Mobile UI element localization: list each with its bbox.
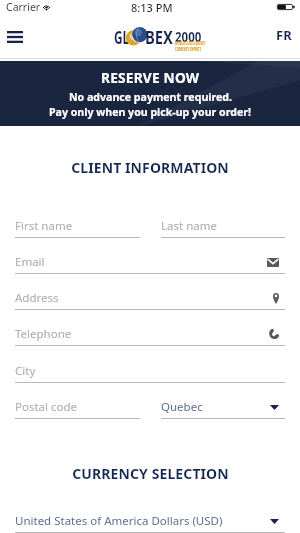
staticText: FR: [276, 26, 292, 44]
staticText: City: [15, 363, 36, 379]
staticText: Quebec: [161, 399, 203, 415]
button[interactable]: Telephone: [15, 324, 285, 346]
staticText: CURRENCY EXPERTS: [175, 46, 202, 52]
staticText: BEX: [145, 25, 174, 49]
staticText: Pay only when you pick-up your order!: [49, 105, 251, 119]
button[interactable]: City: [15, 361, 285, 383]
staticText: No advance payment required.: [69, 90, 232, 104]
staticText: 8:13 PM: [131, 0, 173, 15]
other: Open list: [270, 405, 279, 410]
staticText: Carrier: [6, 0, 41, 14]
button[interactable]: Quebec: [161, 397, 285, 419]
other: Email: [267, 258, 279, 267]
button[interactable]: United States of America Dollars (USD): [15, 511, 285, 533]
button[interactable]: First name: [15, 216, 140, 238]
staticText: 2000: [175, 26, 202, 46]
button[interactable]: Open navigation menu: [2, 24, 28, 50]
staticText: Postal code: [15, 399, 78, 415]
staticText: WORLD CLASS SERVICE: [175, 40, 205, 46]
staticText: CURRENCY SELECTION: [72, 464, 229, 483]
other: Address: [273, 293, 279, 304]
other: Telephone: [269, 329, 279, 339]
staticText: GL: [114, 25, 130, 49]
button[interactable]: FR: [276, 26, 292, 44]
button[interactable]: Last name: [161, 216, 285, 238]
button[interactable]: Email: [15, 252, 285, 274]
button[interactable]: Address: [15, 288, 285, 310]
staticText: Last name: [161, 218, 217, 234]
staticText: RESERVE NOW: [101, 68, 200, 87]
staticText: First name: [15, 218, 73, 234]
other: Open list: [270, 519, 279, 524]
staticText: Telephone: [15, 326, 72, 342]
staticText: Address: [15, 290, 59, 306]
staticText: United States of America Dollars (USD): [15, 513, 223, 529]
staticText: CLIENT INFORMATION: [71, 158, 229, 177]
staticText: Email: [15, 254, 45, 270]
button[interactable]: Postal code: [15, 397, 140, 419]
